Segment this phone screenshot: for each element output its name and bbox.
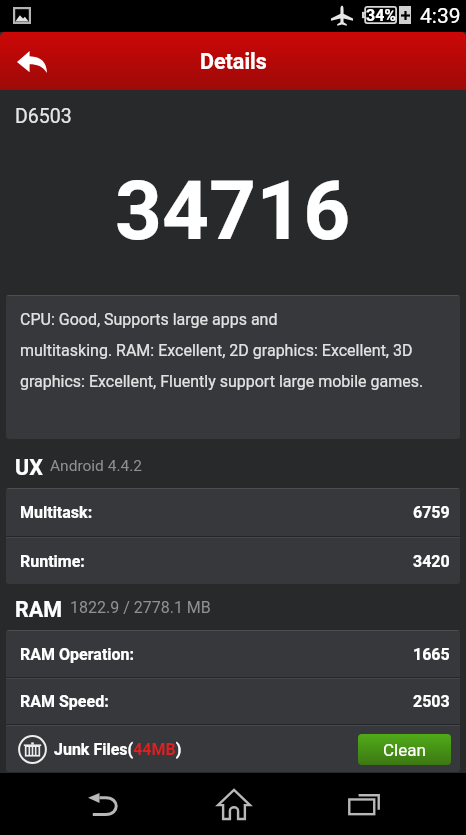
- staticText: RAM Speed:: [20, 692, 109, 711]
- button[interactable]: Back: [69, 773, 138, 835]
- staticText: 4:39: [420, 4, 461, 29]
- button[interactable]: Runtime:: [6, 538, 460, 584]
- staticText: D6503: [15, 105, 72, 128]
- staticText: RAM Operation:: [20, 645, 135, 664]
- button[interactable]: Multitask:: [6, 489, 460, 536]
- staticText: Clean: [383, 740, 426, 760]
- button[interactable]: RAM Operation:: [6, 631, 460, 677]
- staticText: Android 4.4.2: [50, 457, 143, 475]
- staticText: 3420: [413, 552, 450, 571]
- button[interactable]: Recent apps: [329, 773, 398, 835]
- staticText: Runtime:: [20, 552, 85, 571]
- staticText: Multitask:: [20, 503, 93, 522]
- staticText: 34716: [115, 163, 351, 259]
- staticText: 6759: [413, 503, 450, 522]
- staticText: 34%: [366, 6, 397, 24]
- button[interactable]: Back: [0, 32, 64, 90]
- button[interactable]: Home: [199, 773, 268, 835]
- staticText: Details: [200, 49, 267, 74]
- button[interactable]: Junk Files(44MB): [6, 726, 460, 772]
- staticText: 1822.9 / 2778.1 MB: [70, 598, 211, 617]
- staticText: CPU: Good, Supports large apps and multi…: [20, 310, 446, 390]
- button[interactable]: RAM Speed:: [6, 679, 460, 724]
- staticText: UX: [15, 455, 43, 480]
- button[interactable]: Clean: [358, 734, 451, 765]
- staticText: 1665: [413, 645, 450, 664]
- button[interactable]: CPU: Good, Supports large apps and multi…: [6, 295, 460, 439]
- staticText: RAM: [15, 597, 63, 622]
- staticText: Junk Files(44MB): [54, 740, 182, 759]
- staticText: 2503: [413, 692, 450, 711]
